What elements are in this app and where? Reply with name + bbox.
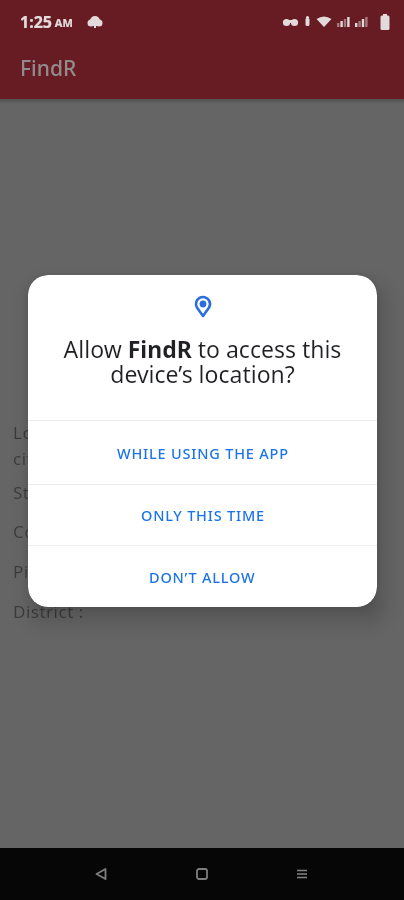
staticText: Pincode : [13, 560, 91, 583]
staticText: Allow FindR to access this device’s loca… [28, 333, 377, 390]
button[interactable] [278, 850, 326, 898]
staticText: State : [13, 481, 67, 504]
staticText: FindR [20, 54, 77, 83]
staticText: 1:25 [20, 11, 52, 33]
staticText: Country : [13, 520, 91, 543]
staticText: District : [13, 600, 84, 623]
button[interactable]: ONLY THIS TIME [28, 485, 377, 545]
staticText: DON’T ALLOW [149, 567, 256, 587]
button[interactable] [178, 850, 226, 898]
staticText: Location : [13, 421, 96, 444]
button[interactable]: DON’T ALLOW [28, 546, 377, 607]
staticText: WHILE USING THE APP [117, 443, 289, 463]
staticText: AM [52, 15, 73, 30]
staticText: ONLY THIS TIME [141, 505, 265, 525]
button[interactable] [77, 850, 125, 898]
staticText: city : [13, 447, 53, 470]
button[interactable]: WHILE USING THE APP [28, 421, 377, 484]
